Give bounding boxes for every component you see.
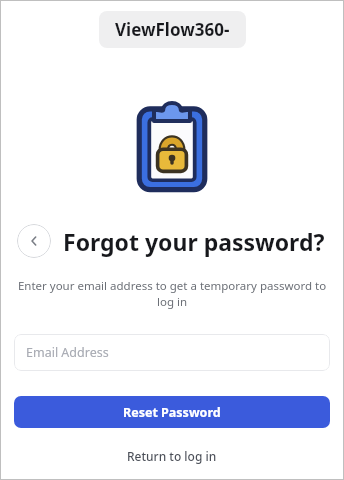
button[interactable]: Reset Password: [14, 396, 330, 428]
button[interactable]: ViewFlow360-: [99, 11, 246, 48]
staticText: Reset Password: [123, 404, 221, 421]
button[interactable]: Back: [17, 224, 51, 258]
staticText: Enter your email address to get a tempor…: [12, 278, 332, 310]
staticText: Return to log in: [127, 448, 217, 464]
button[interactable]: Email Address: [14, 334, 330, 371]
staticText: ViewFlow360-: [115, 18, 230, 41]
button[interactable]: Return to log in: [117, 444, 227, 468]
staticText: Forgot your password?: [63, 226, 325, 257]
staticText: Email Address: [26, 344, 109, 361]
